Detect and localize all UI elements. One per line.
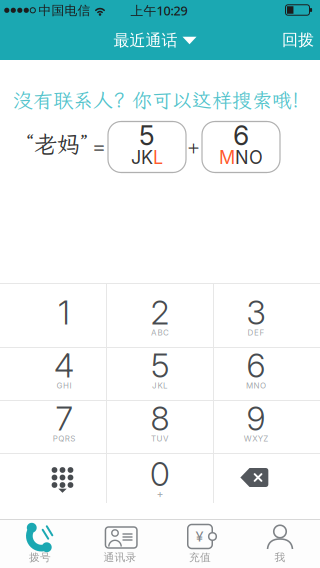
staticText: 回拨: [282, 30, 314, 50]
staticText: 7: [55, 399, 72, 438]
staticText: JKL: [152, 381, 168, 390]
staticText: 6: [233, 119, 249, 152]
staticText: TUV: [151, 434, 169, 443]
staticText: 3: [246, 293, 265, 332]
staticText: 4: [54, 346, 74, 385]
staticText: PQRS: [53, 434, 75, 443]
staticText: 5: [139, 119, 155, 152]
staticText: +: [156, 487, 163, 500]
button[interactable]: [213, 453, 320, 506]
staticText: 通讯录: [103, 551, 136, 564]
staticText: 最近通话: [113, 30, 177, 51]
staticText: 没有联系人? 你可以这样搜索哦!: [13, 87, 299, 113]
staticText: 上午10:29: [130, 2, 187, 19]
staticText: 充值: [189, 551, 211, 564]
staticText: +: [187, 133, 199, 159]
staticText: 2: [150, 293, 169, 332]
button[interactable]: 8: [107, 400, 213, 453]
staticText: 拨号: [29, 551, 51, 564]
staticText: 0: [150, 454, 170, 494]
button[interactable]: 4: [0, 347, 107, 400]
staticText: 我: [274, 551, 285, 564]
staticText: ABC: [151, 328, 169, 337]
staticText: ¥: [195, 526, 203, 546]
button[interactable]: 我: [240, 519, 320, 568]
staticText: WXYZ: [244, 434, 268, 443]
staticText: M: [219, 147, 235, 168]
button[interactable]: 7: [0, 400, 107, 453]
staticText: 9: [246, 399, 265, 438]
button[interactable]: 5: [107, 347, 213, 400]
staticText: 1: [58, 293, 70, 332]
staticText: 6: [246, 346, 265, 385]
button[interactable]: ¥: [160, 519, 240, 568]
staticText: MNO: [246, 381, 266, 390]
staticText: NO: [235, 147, 263, 168]
button[interactable]: 最近通话: [113, 20, 196, 60]
button[interactable]: 2: [107, 283, 213, 347]
button[interactable]: 3: [213, 283, 320, 347]
staticText: L: [153, 147, 163, 168]
button[interactable]: 回拨: [276, 20, 320, 60]
staticText: JK: [131, 147, 153, 168]
staticText: 中国电信: [38, 2, 90, 18]
staticText: 5: [151, 346, 169, 385]
button[interactable]: 9: [213, 400, 320, 453]
staticText: =: [93, 133, 105, 159]
button[interactable]: 通讯录: [80, 519, 160, 568]
button[interactable]: 0: [107, 453, 213, 506]
button[interactable]: 1: [0, 283, 107, 347]
staticText: GHI: [56, 381, 71, 390]
staticText: 8: [150, 399, 169, 438]
button[interactable]: [0, 453, 107, 506]
button[interactable]: 拨号: [0, 519, 80, 568]
staticText: DEF: [247, 328, 264, 337]
button[interactable]: 6: [213, 347, 320, 400]
staticText: “老妈”: [26, 129, 88, 159]
